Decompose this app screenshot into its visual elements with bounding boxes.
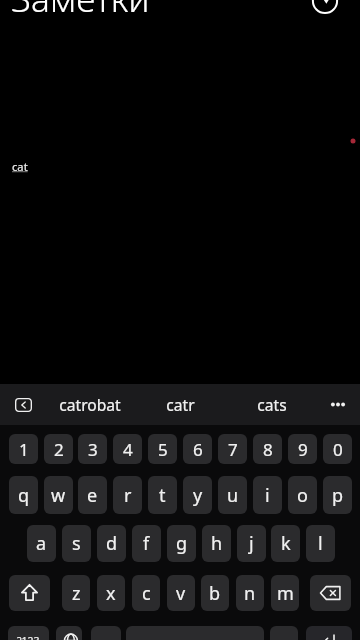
- staticText: y: [193, 483, 203, 508]
- button[interactable]: m: [271, 575, 299, 611]
- button[interactable]: t: [148, 476, 177, 514]
- staticText: cats: [257, 394, 287, 415]
- button[interactable]: q: [9, 476, 38, 514]
- staticText: a: [36, 531, 47, 556]
- staticText: m: [277, 581, 294, 606]
- button[interactable]: Previous suggestions: [15, 398, 32, 412]
- staticText: catr: [166, 394, 195, 415]
- button[interactable]: .: [270, 626, 298, 640]
- staticText: e: [87, 483, 98, 508]
- button[interactable]: Change keyboard language: [56, 626, 82, 640]
- button[interactable]: a: [27, 525, 56, 562]
- button[interactable]: cat: [12, 159, 28, 174]
- staticText: ?123: [17, 634, 40, 640]
- staticText: i: [265, 483, 270, 508]
- button[interactable]: k: [271, 525, 300, 562]
- staticText: w: [51, 483, 66, 508]
- button[interactable]: j: [237, 525, 266, 562]
- staticText: t: [159, 483, 166, 508]
- button[interactable]: Reminder: [307, 0, 343, 19]
- button[interactable]: 8: [253, 434, 282, 464]
- staticText: q: [18, 483, 30, 508]
- button[interactable]: z: [62, 575, 90, 611]
- button[interactable]: e: [78, 476, 107, 514]
- button[interactable]: 2: [44, 434, 73, 464]
- button[interactable]: f: [132, 525, 161, 562]
- button[interactable]: 4: [113, 434, 142, 464]
- button[interactable]: 0: [323, 434, 352, 464]
- button[interactable]: 7: [218, 434, 247, 464]
- staticText: 7: [228, 438, 238, 461]
- staticText: Заметки: [11, 0, 150, 22]
- staticText: f: [143, 531, 150, 556]
- staticText: 8: [263, 438, 273, 461]
- button[interactable]: h: [202, 525, 231, 562]
- staticText: 0: [333, 438, 343, 461]
- button[interactable]: u: [218, 476, 247, 514]
- button[interactable]: More options: [326, 394, 350, 415]
- button[interactable]: x: [97, 575, 125, 611]
- staticText: b: [209, 581, 221, 606]
- button[interactable]: s: [62, 525, 91, 562]
- staticText: h: [211, 531, 223, 556]
- staticText: c: [142, 581, 151, 606]
- button[interactable]: Backspace: [310, 575, 351, 611]
- staticText: u: [227, 483, 239, 508]
- button[interactable]: o: [288, 476, 317, 514]
- staticText: 4: [123, 438, 133, 461]
- staticText: x: [106, 581, 116, 606]
- staticText: s: [72, 531, 81, 556]
- button[interactable]: cats: [227, 384, 317, 425]
- staticText: v: [176, 581, 186, 606]
- button[interactable]: Enter: [306, 626, 352, 640]
- staticText: j: [249, 531, 254, 556]
- button[interactable]: Shift: [9, 575, 50, 611]
- button[interactable]: 1: [9, 434, 38, 464]
- staticText: p: [332, 483, 344, 508]
- button[interactable]: b: [201, 575, 229, 611]
- staticText: k: [281, 531, 291, 556]
- staticText: 5: [158, 438, 168, 461]
- button[interactable]: c: [132, 575, 160, 611]
- button[interactable]: l: [306, 525, 335, 562]
- button[interactable]: 9: [288, 434, 317, 464]
- staticText: 3: [88, 438, 98, 461]
- staticText: g: [176, 531, 188, 556]
- staticText: d: [106, 531, 118, 556]
- button[interactable]: v: [167, 575, 195, 611]
- button[interactable]: 3: [78, 434, 107, 464]
- staticText: n: [244, 581, 256, 606]
- button[interactable]: d: [97, 525, 126, 562]
- button[interactable]: 6: [183, 434, 212, 464]
- button[interactable]: 5: [148, 434, 177, 464]
- staticText: l: [318, 531, 323, 556]
- staticText: 6: [193, 438, 203, 461]
- button[interactable]: ,: [91, 626, 121, 640]
- staticText: r: [124, 483, 132, 508]
- button[interactable]: y: [183, 476, 212, 514]
- button[interactable]: i: [253, 476, 282, 514]
- button[interactable]: p: [323, 476, 352, 514]
- button[interactable]: catr: [135, 384, 225, 425]
- staticText: cat: [12, 159, 28, 174]
- staticText: catrobat: [59, 394, 121, 415]
- button[interactable]: r: [113, 476, 142, 514]
- button[interactable]: catrobat: [45, 384, 135, 425]
- button[interactable]: n: [236, 575, 264, 611]
- staticText: 9: [298, 438, 308, 461]
- staticText: o: [297, 483, 308, 508]
- button[interactable]: w: [44, 476, 73, 514]
- staticText: 1: [19, 438, 29, 461]
- button[interactable]: ?123: [8, 626, 49, 640]
- staticText: 2: [54, 438, 64, 461]
- button[interactable]: g: [167, 525, 196, 562]
- staticText: z: [72, 581, 81, 606]
